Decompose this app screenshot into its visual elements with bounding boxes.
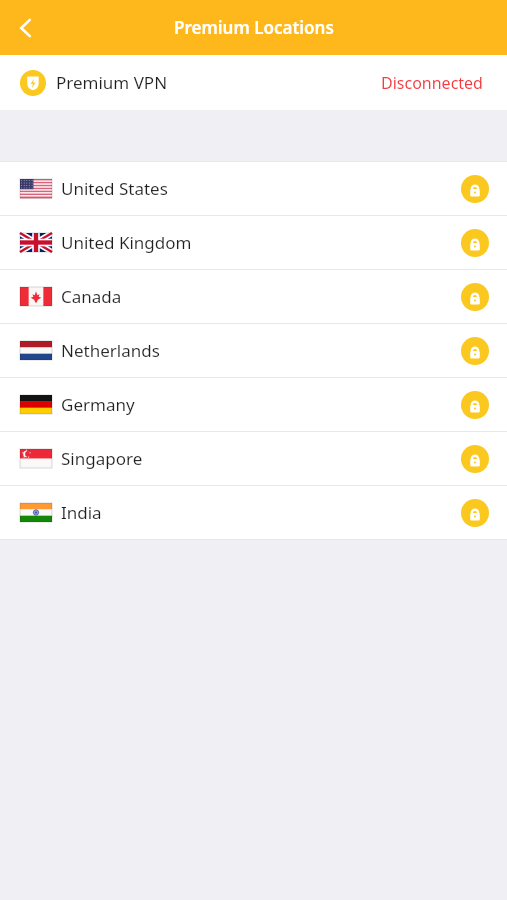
staticText: India <box>61 501 102 524</box>
button[interactable]: Unlock Netherlands premium location <box>461 337 489 365</box>
staticText: United Kingdom <box>61 231 192 254</box>
staticText: Premium Locations <box>174 16 334 39</box>
staticText: Germany <box>61 393 135 416</box>
button[interactable]: Unlock Singapore premium location <box>461 445 489 473</box>
staticText: United States <box>61 177 168 200</box>
button[interactable]: Back <box>0 2 52 54</box>
staticText: Premium VPN <box>56 71 168 94</box>
button[interactable]: Premium VPN <box>20 55 483 110</box>
button[interactable]: India <box>0 486 507 540</box>
button[interactable]: Unlock Canada premium location <box>461 283 489 311</box>
staticText: Disconnected <box>381 72 483 94</box>
button[interactable]: Unlock Germany premium location <box>461 391 489 419</box>
button[interactable]: Canada <box>0 270 507 324</box>
button[interactable]: United Kingdom <box>0 216 507 270</box>
button[interactable]: Singapore <box>0 432 507 486</box>
button[interactable]: Germany <box>0 378 507 432</box>
button[interactable]: Unlock India premium location <box>461 499 489 527</box>
staticText: Netherlands <box>61 339 160 362</box>
button[interactable]: Netherlands <box>0 324 507 378</box>
button[interactable]: Unlock United States premium location <box>461 175 489 203</box>
staticText: Singapore <box>61 447 143 470</box>
button[interactable]: United States <box>0 162 507 216</box>
button[interactable]: Unlock United Kingdom premium location <box>461 229 489 257</box>
staticText: Canada <box>61 285 122 308</box>
